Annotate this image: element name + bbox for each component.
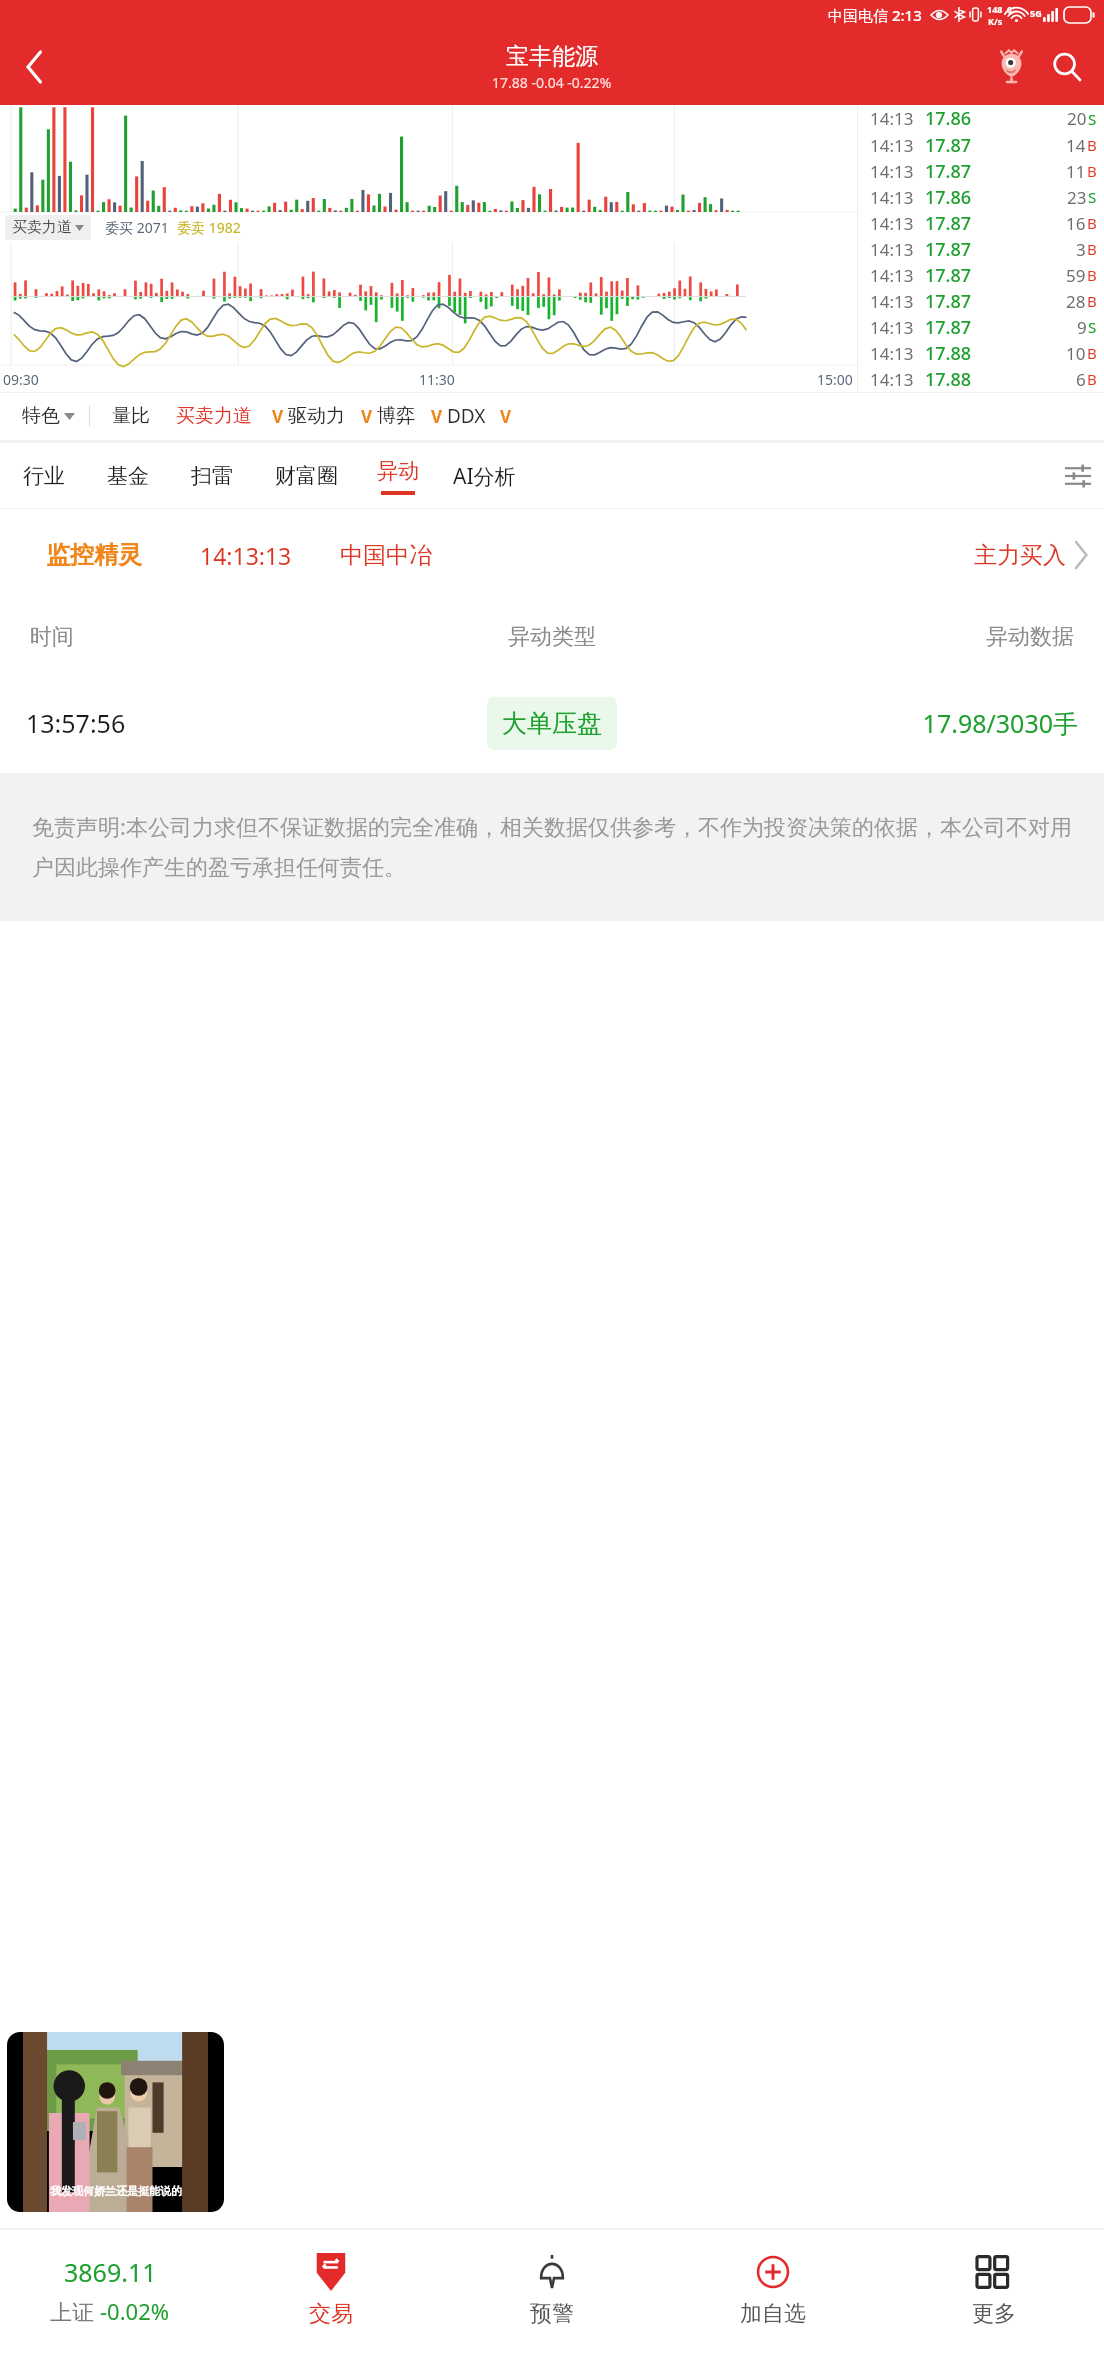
button[interactable]: 14:13 <box>858 236 1104 262</box>
button[interactable]: 扫雷 <box>170 451 254 501</box>
button[interactable]: Search <box>1042 42 1092 92</box>
staticText: 3 <box>1076 238 1086 261</box>
staticText: 17.88 -0.04 -0.22% <box>492 73 612 92</box>
button[interactable]: 更多 <box>883 2228 1104 2352</box>
staticText: 17.86 <box>925 106 972 131</box>
staticText: 宝丰能源 <box>506 42 598 71</box>
staticText: -0.02% <box>100 2296 170 2326</box>
staticText: B <box>1087 135 1097 155</box>
button[interactable]: Settings <box>1052 450 1104 502</box>
button[interactable]: 14:13 <box>858 158 1104 184</box>
staticText: 14:13 <box>870 238 914 261</box>
button[interactable]: V <box>345 404 415 428</box>
staticText: 15:00 <box>817 370 853 389</box>
staticText: S <box>1088 187 1097 207</box>
button[interactable]: 14:13 <box>858 366 1104 392</box>
staticText: 17.88 <box>925 367 972 392</box>
staticText: B <box>1087 265 1097 285</box>
button[interactable]: 13:57:56 <box>0 673 1104 773</box>
button[interactable]: 14:13 <box>858 105 1104 132</box>
button[interactable]: 预警 <box>441 2228 662 2352</box>
staticText: 14:13 <box>870 160 914 183</box>
button[interactable]: 14:13 <box>858 340 1104 366</box>
staticText: 148 <box>987 3 1003 15</box>
button[interactable]: V <box>415 403 486 429</box>
button[interactable]: Assistant <box>986 42 1036 92</box>
staticText: 加自选 <box>740 2300 806 2328</box>
staticText: 59 <box>1066 264 1086 287</box>
staticText: S <box>1088 109 1097 129</box>
button[interactable]: 加自选 <box>662 2228 883 2352</box>
staticText: 量比 <box>112 404 150 428</box>
staticText: AI分析 <box>453 462 516 491</box>
staticText: 监控精灵 <box>46 540 142 570</box>
staticText: 驱动力 <box>288 404 345 428</box>
button[interactable]: 14:13 <box>858 262 1104 288</box>
staticText: 异动数据 <box>736 623 1074 651</box>
button[interactable]: 量比 <box>90 404 172 428</box>
staticText: 大单压盘 <box>502 708 602 739</box>
staticText: 11 <box>1066 160 1086 183</box>
staticText: 14:13 <box>870 186 914 209</box>
staticText: 20 <box>1067 107 1087 130</box>
staticText: 买卖力道 <box>12 218 72 237</box>
button[interactable]: 14:13 <box>858 132 1104 158</box>
button[interactable]: 交易 <box>220 2228 441 2352</box>
staticText: V <box>272 405 284 428</box>
staticText: 我发现何娇兰还是挺能说的 <box>50 2184 182 2198</box>
staticText: 17.87 <box>925 315 972 340</box>
staticText: 中国电信 2:13 <box>828 5 922 25</box>
button[interactable]: 买卖力道 <box>172 404 256 428</box>
button[interactable]: 异动 <box>359 458 437 495</box>
staticText: 14:13 <box>870 212 914 235</box>
staticText: B <box>1087 213 1097 233</box>
staticText: B <box>1087 343 1097 363</box>
staticText: 14:13 <box>870 342 914 365</box>
button[interactable]: Back <box>8 41 60 93</box>
button[interactable]: 监控精灵 <box>0 509 1104 601</box>
button[interactable]: AI分析 <box>437 450 532 503</box>
staticText: 免责声明:本公司力求但不保证数据的完全准确，相关数据仅供参考，不作为投资决策的依… <box>32 811 1078 881</box>
staticText: 14:13 <box>870 264 914 287</box>
staticText: 更多 <box>972 2300 1016 2328</box>
staticText: 17.87 <box>925 237 972 262</box>
staticText: 16 <box>1066 212 1086 235</box>
button[interactable]: 14:13 <box>858 314 1104 340</box>
button[interactable]: 特色 <box>0 404 89 428</box>
button[interactable]: Video player <box>7 2032 224 2212</box>
staticText: 时间 <box>30 623 368 651</box>
button[interactable]: 行业 <box>2 451 86 501</box>
staticText: 17.87 <box>925 289 972 314</box>
button[interactable]: 财富圈 <box>254 451 359 501</box>
staticText: 13:57:56 <box>26 706 368 740</box>
staticText: 17.86 <box>925 185 972 210</box>
button[interactable]: 14:13 <box>858 210 1104 236</box>
button[interactable]: 14:13 <box>858 288 1104 314</box>
staticText: 交易 <box>309 2300 353 2328</box>
staticText: 9 <box>1077 316 1087 339</box>
staticText: DDX <box>447 403 486 429</box>
staticText: B <box>1087 161 1097 181</box>
staticText: 14:13 <box>870 290 914 313</box>
staticText: 23 <box>1067 186 1087 209</box>
staticText: 14:13 <box>870 316 914 339</box>
staticText: 扫雷 <box>191 463 233 489</box>
button[interactable]: V <box>256 404 345 428</box>
staticText: 中国中冶 <box>340 541 432 570</box>
staticText: V <box>500 405 512 428</box>
staticText: 特色 <box>22 404 60 428</box>
staticText: 买卖力道 <box>176 404 252 428</box>
staticText: 14:13 <box>870 107 914 130</box>
button[interactable]: 14:13 <box>858 184 1104 210</box>
staticText: 预警 <box>530 2300 574 2328</box>
staticText: 17.87 <box>925 211 972 236</box>
staticText: 17.98/3030手 <box>736 706 1078 740</box>
button[interactable]: 3869.11 <box>0 2228 220 2352</box>
staticText: 3869.11 <box>64 2255 157 2289</box>
staticText: V <box>431 405 443 428</box>
staticText: 14:13:13 <box>200 540 292 571</box>
staticText: 行业 <box>23 463 65 489</box>
button[interactable]: 基金 <box>86 451 170 501</box>
button[interactable]: 买卖力道 <box>5 215 91 240</box>
staticText: 17.87 <box>925 133 972 158</box>
